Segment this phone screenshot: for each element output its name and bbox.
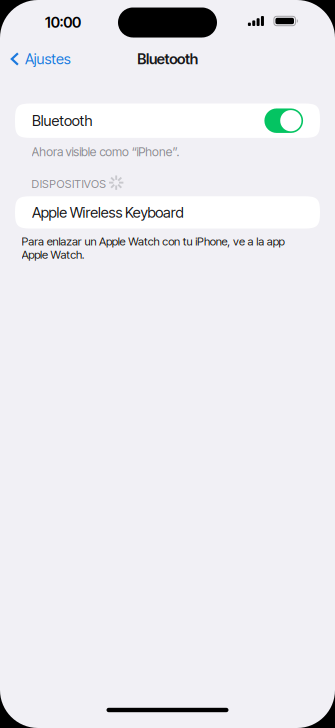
staticText: Apple Wireless Keyboard (32, 203, 184, 221)
staticText: Bluetooth (32, 112, 92, 129)
staticText: DISPOSITIVOS (31, 177, 106, 191)
staticText: Bluetooth (137, 50, 198, 68)
staticText: Ajustes (25, 50, 71, 68)
staticText: Para enlazar un Apple Watch con tu iPhon… (21, 234, 284, 261)
button[interactable]: Ajustes (0, 44, 79, 74)
staticText: 10:00 (45, 14, 81, 31)
button[interactable]: Bluetooth (264, 108, 303, 133)
staticText: Ahora visible como “iPhone”. (31, 144, 179, 159)
button[interactable]: Apple Wireless Keyboard (15, 196, 320, 228)
